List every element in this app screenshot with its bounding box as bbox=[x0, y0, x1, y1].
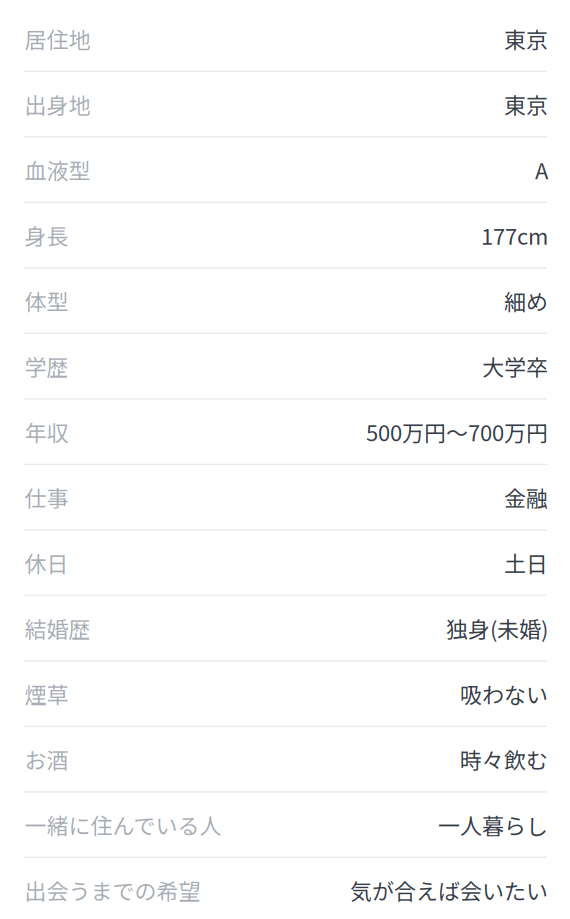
staticText: 東京 bbox=[504, 88, 548, 120]
staticText: 出会うまでの希望 bbox=[24, 874, 200, 906]
staticText: 年収 bbox=[24, 416, 68, 448]
staticText: 東京 bbox=[504, 23, 548, 55]
staticText: 血液型 bbox=[24, 154, 90, 186]
staticText: 一人暮らし bbox=[438, 809, 548, 841]
staticText: 土日 bbox=[504, 547, 548, 579]
button[interactable]: 結婚歴 bbox=[0, 596, 570, 662]
staticText: お酒 bbox=[24, 743, 68, 775]
button[interactable]: 年収 bbox=[0, 400, 570, 465]
staticText: 大学卒 bbox=[482, 350, 548, 382]
staticText: 居住地 bbox=[24, 23, 90, 55]
staticText: 休日 bbox=[24, 547, 68, 579]
button[interactable]: 血液型 bbox=[0, 138, 570, 203]
staticText: 独身(未婚) bbox=[446, 612, 548, 644]
button[interactable]: 出会うまでの希望 bbox=[0, 858, 570, 919]
button[interactable]: 煙草 bbox=[0, 662, 570, 727]
staticText: 177cm bbox=[481, 219, 548, 251]
button[interactable]: 休日 bbox=[0, 531, 570, 596]
staticText: 身長 bbox=[24, 219, 68, 251]
button[interactable]: 仕事 bbox=[0, 465, 570, 531]
staticText: 出身地 bbox=[24, 88, 90, 120]
staticText: A bbox=[535, 154, 548, 186]
button[interactable]: 身長 bbox=[0, 203, 570, 269]
staticText: 一緒に住んでいる人 bbox=[24, 809, 221, 841]
staticText: 金融 bbox=[504, 481, 548, 513]
staticText: 吸わない bbox=[460, 678, 548, 710]
button[interactable]: 出身地 bbox=[0, 72, 570, 138]
button[interactable]: 学歴 bbox=[0, 334, 570, 400]
staticText: 500万円〜700万円 bbox=[366, 416, 548, 448]
staticText: 体型 bbox=[24, 285, 68, 317]
staticText: 気が合えば会いたい bbox=[350, 874, 548, 906]
staticText: 仕事 bbox=[24, 481, 68, 513]
staticText: 学歴 bbox=[24, 350, 68, 382]
staticText: 煙草 bbox=[24, 678, 68, 710]
button[interactable]: 一緒に住んでいる人 bbox=[0, 793, 570, 858]
button[interactable]: 居住地 bbox=[0, 7, 570, 72]
button[interactable]: 体型 bbox=[0, 269, 570, 334]
button[interactable]: お酒 bbox=[0, 727, 570, 793]
staticText: 時々飲む bbox=[460, 743, 548, 775]
staticText: 細め bbox=[504, 285, 548, 317]
staticText: 結婚歴 bbox=[24, 612, 90, 644]
